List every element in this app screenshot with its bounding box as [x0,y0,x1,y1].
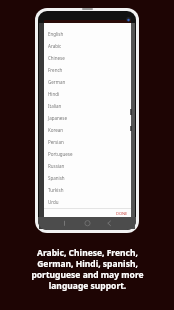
staticText: Persian [48,139,64,145]
button[interactable]: English [44,28,131,40]
staticText: Italian [48,103,62,109]
staticText: Russian [48,163,65,169]
button[interactable]: Hindi [44,88,131,100]
staticText: Portuguese [48,151,73,157]
button[interactable]: Arabic [44,40,131,52]
staticText: Urdu [48,199,59,205]
button[interactable]: Chinese [44,52,131,64]
button[interactable]: Portuguese [44,148,131,160]
staticText: English [48,31,64,37]
staticText: Arabic, Chinese, French, German, Hindi, … [31,247,144,291]
staticText: Japanese [48,115,68,121]
button[interactable]: Spanish [44,172,131,184]
staticText: German [48,79,66,85]
staticText: Korean [48,127,64,133]
button[interactable]: Japanese [44,112,131,124]
staticText: Chinese [48,55,65,61]
staticText: DONE [116,211,128,216]
staticText: Hindi [48,91,60,97]
staticText: Turkish [48,187,64,193]
button[interactable]: French [44,64,131,76]
button[interactable]: German [44,76,131,88]
staticText: Spanish [48,175,65,181]
button[interactable]: DONE [44,209,131,217]
button[interactable]: Persian [44,136,131,148]
button[interactable]: Russian [44,160,131,172]
button[interactable]: Italian [44,100,131,112]
button[interactable]: Urdu [44,196,131,208]
staticText: French [48,67,63,73]
staticText: Arabic [48,43,62,49]
button[interactable]: Korean [44,124,131,136]
button[interactable]: Turkish [44,184,131,196]
